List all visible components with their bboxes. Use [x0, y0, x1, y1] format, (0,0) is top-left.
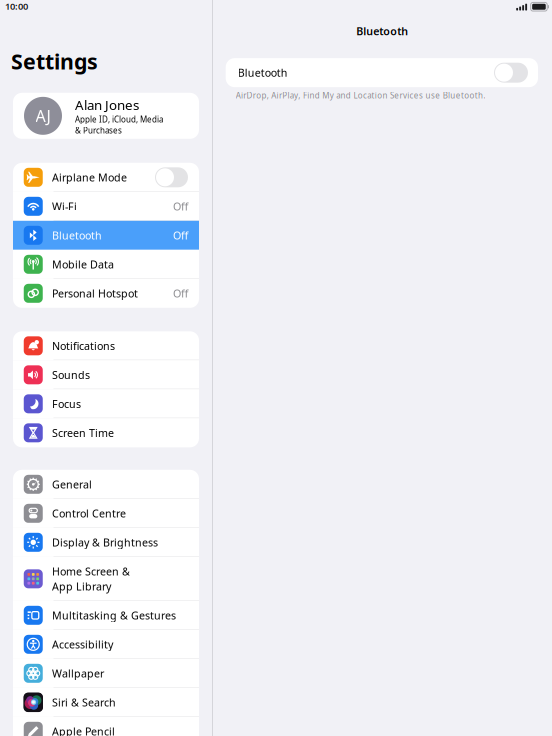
staticText: Settings — [11, 47, 98, 75]
button[interactable]: Bluetooth — [13, 221, 199, 250]
staticText: & Purchases — [75, 125, 122, 136]
button[interactable]: Multitasking & Gestures — [13, 601, 199, 630]
staticText: Apple Pencil — [52, 724, 115, 736]
button[interactable]: Control Centre — [13, 499, 199, 528]
staticText: Multitasking & Gestures — [52, 608, 176, 622]
staticText: Alan Jones — [75, 96, 139, 114]
staticText: Bluetooth — [52, 228, 102, 242]
staticText: Notifications — [52, 339, 115, 353]
staticText: Wallpaper — [52, 666, 104, 680]
button[interactable]: Personal Hotspot — [13, 279, 199, 308]
button[interactable]: General — [13, 470, 199, 499]
staticText: Wi-Fi — [52, 199, 77, 213]
staticText: Screen Time — [52, 426, 114, 440]
staticText: Sounds — [52, 368, 90, 382]
staticText: AJ — [35, 105, 50, 126]
button[interactable]: Airplane Mode — [13, 163, 199, 192]
button[interactable]: Focus — [13, 389, 199, 418]
button[interactable]: Display & Brightness — [13, 528, 199, 557]
button[interactable]: Apple Pencil — [13, 717, 199, 736]
button[interactable]: Accessibility — [13, 630, 199, 659]
staticText: App Library — [52, 579, 111, 593]
staticText: AirDrop, AirPlay, Find My and Location S… — [236, 90, 485, 101]
staticText: Control Centre — [52, 506, 126, 520]
button[interactable]: Screen Time — [13, 418, 199, 447]
staticText: Siri & Search — [52, 695, 116, 709]
staticText: Off — [173, 228, 188, 242]
button[interactable]: Sounds — [13, 360, 199, 389]
button[interactable]: Wallpaper — [13, 659, 199, 688]
staticText: Focus — [52, 397, 81, 411]
staticText: Bluetooth — [238, 66, 288, 80]
staticText: Off — [173, 286, 188, 300]
button[interactable]: Mobile Data — [13, 250, 199, 279]
button[interactable]: Wi-Fi — [13, 192, 199, 221]
staticText: Display & Brightness — [52, 535, 158, 549]
button[interactable]: Home Screen & — [13, 557, 199, 601]
staticText: Off — [173, 199, 188, 213]
button[interactable]: AJ — [13, 93, 199, 139]
staticText: Mobile Data — [52, 257, 114, 271]
staticText: Bluetooth — [356, 24, 408, 38]
staticText: General — [52, 477, 92, 491]
staticText: Personal Hotspot — [52, 286, 138, 300]
staticText: 10:00 — [5, 0, 28, 12]
button[interactable]: Notifications — [13, 331, 199, 360]
staticText: Accessibility — [52, 637, 113, 651]
staticText: Apple ID, iCloud, Media — [75, 114, 163, 125]
staticText: Home Screen & — [52, 564, 130, 578]
staticText: Airplane Mode — [52, 170, 127, 184]
button[interactable]: Siri & Search — [13, 688, 199, 717]
